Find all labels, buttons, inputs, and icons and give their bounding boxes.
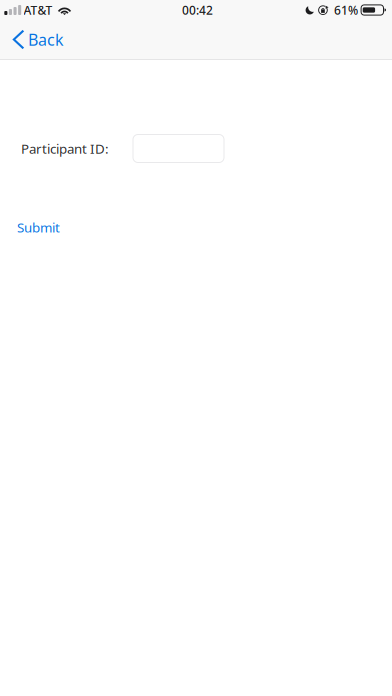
staticText: 00:42	[182, 2, 213, 18]
button[interactable]: Back	[0, 20, 76, 59]
staticText: Submit	[17, 218, 60, 236]
button[interactable]: Participant ID	[133, 134, 224, 162]
staticText: Back	[28, 29, 64, 50]
staticText: AT&T	[23, 2, 52, 18]
button[interactable]: Submit	[17, 215, 60, 239]
staticText: 61%	[334, 2, 358, 18]
staticText: Participant ID:	[21, 140, 109, 157]
